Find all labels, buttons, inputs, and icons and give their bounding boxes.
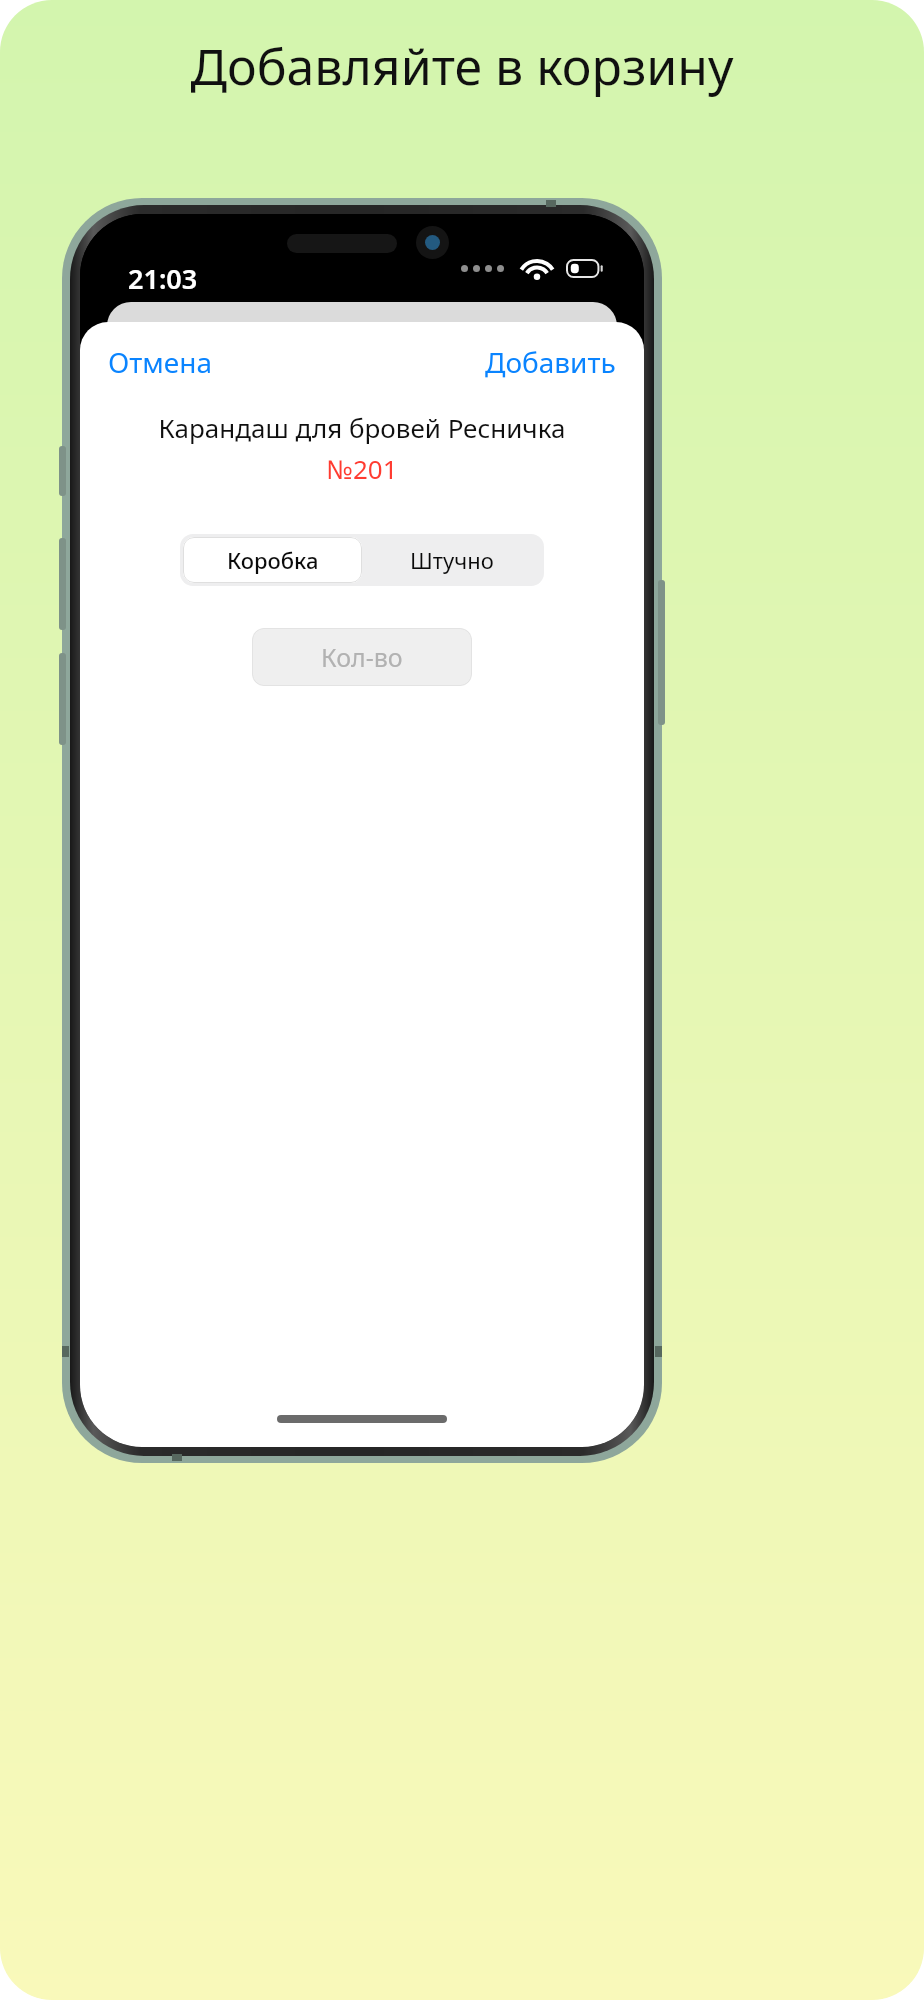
staticText: Отмена	[108, 343, 213, 381]
button[interactable]: Отмена	[80, 331, 241, 393]
staticText: Кол-во	[321, 640, 403, 674]
staticText: Коробка	[227, 545, 319, 575]
staticText: Добавить	[485, 343, 616, 381]
staticText: №201	[80, 451, 644, 486]
staticText: Добавляйте в корзину	[0, 32, 924, 100]
staticText: 21:03	[128, 260, 198, 297]
staticText: Карандаш для бровей Ресничка	[96, 410, 628, 445]
button[interactable]: Коробка	[183, 537, 362, 583]
staticText: Штучно	[410, 545, 494, 575]
button[interactable]: Штучно	[362, 537, 541, 583]
button[interactable]: Количество	[252, 628, 472, 686]
button[interactable]: Добавить	[457, 331, 644, 393]
